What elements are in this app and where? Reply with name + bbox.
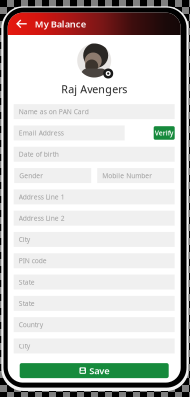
button[interactable]: Gender <box>14 168 91 183</box>
button[interactable]: Back <box>15 17 29 31</box>
button[interactable]: State <box>14 275 175 290</box>
staticText: My Balance <box>35 18 86 30</box>
staticText: State <box>19 299 35 308</box>
button[interactable]: Verify <box>154 126 175 140</box>
button[interactable]: Email Address <box>14 125 125 140</box>
button[interactable]: Country <box>14 317 175 332</box>
button[interactable]: Change profile photo <box>76 43 112 78</box>
staticText: Address Line 1 <box>19 192 65 201</box>
button[interactable]: Address Line 2 <box>14 211 175 226</box>
button[interactable]: Name as on PAN Card <box>14 104 175 119</box>
staticText: Date of birth <box>19 150 59 159</box>
button[interactable]: State <box>14 296 175 311</box>
button[interactable]: City <box>14 338 175 353</box>
staticText: City <box>19 341 30 350</box>
button[interactable]: Save <box>20 363 169 378</box>
staticText: Mobile Number <box>102 171 152 180</box>
staticText: Save <box>89 364 109 377</box>
button[interactable]: Address Line 1 <box>14 189 175 204</box>
staticText: State <box>19 278 35 286</box>
button[interactable]: Date of birth <box>14 147 175 162</box>
button[interactable]: PIN code <box>14 253 175 268</box>
staticText: Country <box>19 320 43 329</box>
staticText: Address Line 2 <box>19 214 65 223</box>
button[interactable]: City <box>14 232 175 247</box>
button[interactable]: Mobile Number <box>97 168 174 183</box>
staticText: Name as on PAN Card <box>19 107 89 116</box>
staticText: Email Address <box>19 128 64 137</box>
staticText: Raj Avengers <box>61 82 127 96</box>
staticText: PIN code <box>19 256 47 265</box>
staticText: City <box>19 235 30 244</box>
staticText: Verify <box>155 128 174 137</box>
staticText: Gender <box>19 171 43 180</box>
